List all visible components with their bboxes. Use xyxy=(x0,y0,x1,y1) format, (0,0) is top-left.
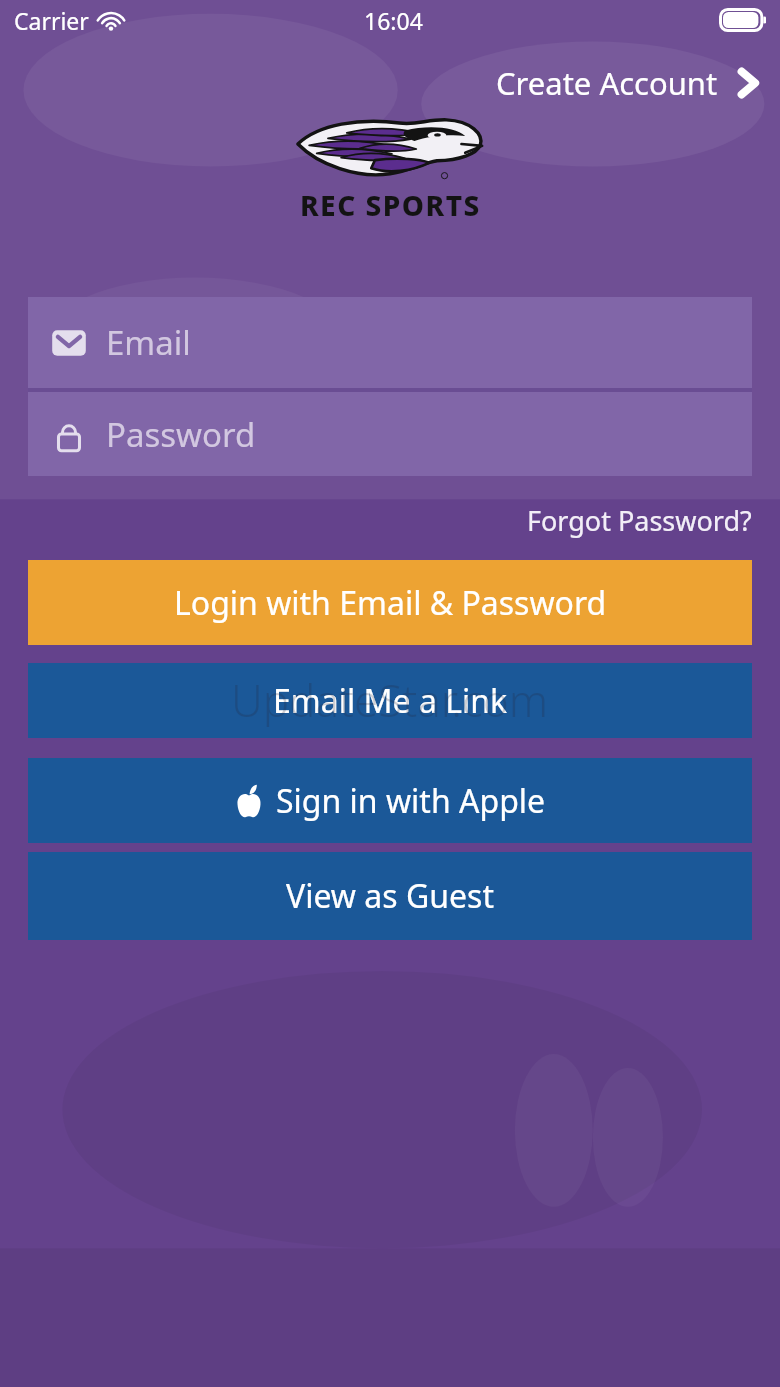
staticText: Login with Email & Password xyxy=(174,581,607,625)
button[interactable]: Forgot Password? xyxy=(503,500,780,541)
other: Email xyxy=(48,322,90,364)
staticText: View as Guest xyxy=(286,874,494,918)
button[interactable]: Sign in with Apple xyxy=(28,758,752,843)
button[interactable]: View as Guest xyxy=(28,852,752,940)
button[interactable]: Password xyxy=(28,392,752,476)
staticText: Sign in with Apple xyxy=(276,779,546,823)
other: Password xyxy=(48,413,90,455)
staticText: REC SPORTS xyxy=(300,186,481,224)
staticText: 16:04 xyxy=(364,5,423,36)
button[interactable]: Create Account xyxy=(472,58,780,108)
staticText: UpdateStar.com xyxy=(231,670,549,730)
staticText: Email Me a Link xyxy=(273,679,508,723)
button[interactable]: Email xyxy=(28,297,752,388)
staticText: Carrier xyxy=(14,5,89,36)
button[interactable]: Email Me a Link xyxy=(28,663,752,738)
staticText: Password xyxy=(106,412,256,457)
staticText: Email xyxy=(106,320,191,365)
button[interactable]: Login with Email & Password xyxy=(28,560,752,645)
staticText: Create Account xyxy=(496,62,718,104)
staticText: Forgot Password? xyxy=(527,502,752,539)
